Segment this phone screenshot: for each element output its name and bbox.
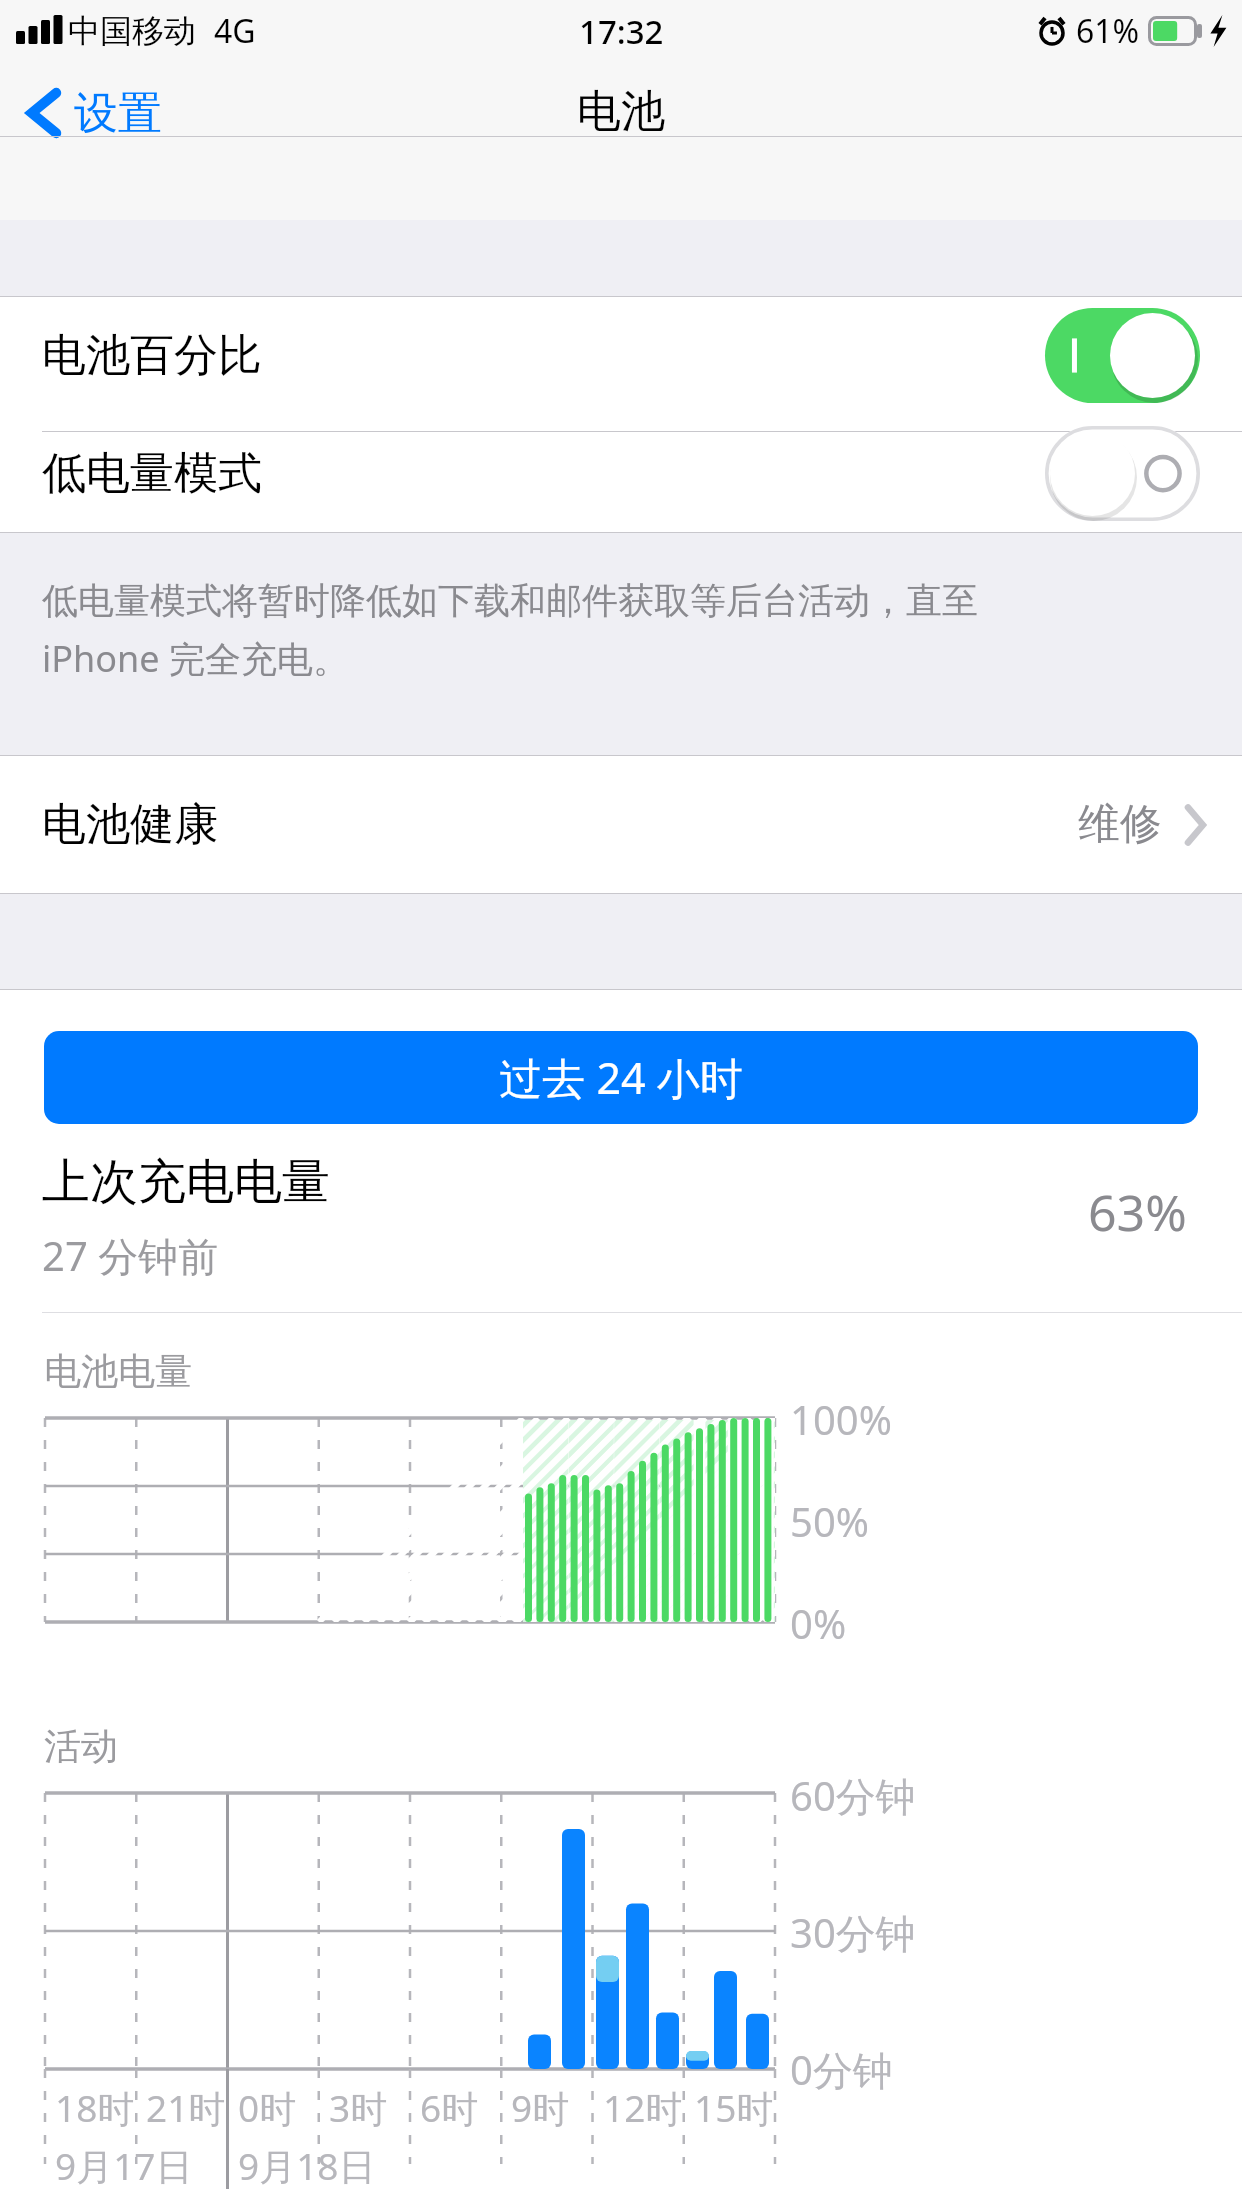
button[interactable]: 设置	[0, 70, 182, 156]
staticText: 50%	[790, 1494, 869, 1548]
staticText: 63%	[1088, 1178, 1187, 1246]
staticText: 电池健康	[42, 797, 218, 852]
staticText: 61%	[1076, 9, 1140, 53]
staticText: 17:32	[579, 9, 664, 54]
button[interactable]: 开关，已关闭	[1045, 426, 1200, 521]
staticText: 低电量模式	[42, 446, 262, 501]
staticText: 0时	[238, 2082, 297, 2133]
staticText: 30分钟	[790, 1905, 916, 1960]
staticText: 中国移动	[68, 11, 196, 51]
staticText: 12时	[603, 2082, 683, 2133]
staticText: 18时	[55, 2082, 135, 2133]
staticText: 15时	[694, 2082, 774, 2133]
staticText: 27 分钟前	[42, 1228, 219, 1283]
staticText: 0分钟	[790, 2042, 893, 2097]
staticText: 21时	[146, 2082, 226, 2133]
staticText: 6时	[420, 2082, 479, 2133]
button[interactable]: 过去 24 小时	[44, 1031, 1198, 1124]
staticText: 过去 24 小时	[499, 1048, 743, 1107]
staticText: 60分钟	[790, 1768, 916, 1823]
staticText: 电池	[577, 84, 665, 139]
button[interactable]: 低电量模式	[0, 415, 1242, 532]
staticText: 电池百分比	[42, 328, 262, 383]
staticText: 9月17日	[55, 2140, 193, 2191]
staticText: 维修	[1078, 798, 1162, 851]
staticText: 电池电量	[44, 1348, 192, 1395]
button[interactable]: 开关，已打开	[1045, 308, 1200, 403]
staticText: 100%	[790, 1392, 892, 1446]
staticText: 0%	[790, 1596, 847, 1650]
staticText: 活动	[44, 1723, 118, 1770]
staticText: 上次充电电量	[42, 1152, 330, 1212]
staticText: 3时	[329, 2082, 388, 2133]
button[interactable]: 电池百分比	[0, 297, 1242, 414]
staticText: 9月18日	[238, 2140, 376, 2191]
button[interactable]: 电池健康	[0, 756, 1242, 893]
staticText: 9时	[511, 2082, 570, 2133]
staticText: 4G	[214, 9, 256, 53]
staticText: 设置	[74, 86, 162, 141]
staticText: 低电量模式将暂时降低如下载和邮件获取等后台活动，直至 iPhone 完全充电。	[42, 578, 1202, 682]
